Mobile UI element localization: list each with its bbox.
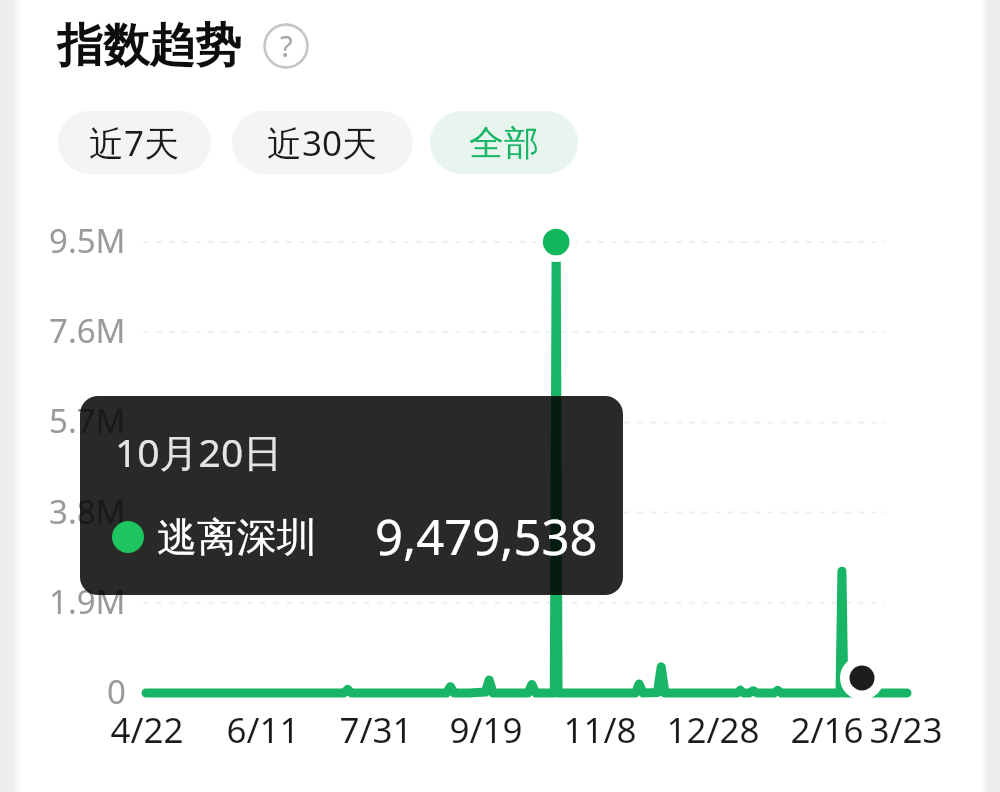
staticText: 9,479,538 <box>375 503 598 570</box>
staticText: 5.7M <box>49 398 126 440</box>
staticText: 逃离深圳 <box>157 512 317 562</box>
staticText: 12/28 <box>666 706 760 750</box>
staticText: 1.9M <box>49 579 126 621</box>
staticText: 近7天 <box>89 119 180 167</box>
button[interactable]: Trend chart <box>130 210 920 710</box>
staticText: 7.6M <box>49 308 126 350</box>
staticText: 10月20日 <box>115 425 283 478</box>
staticText: 11/8 <box>563 706 637 750</box>
button[interactable]: 近30天 <box>232 111 413 174</box>
staticText: 近30天 <box>267 119 378 167</box>
staticText: 9.5M <box>49 218 126 260</box>
staticText: 9/19 <box>449 706 523 750</box>
staticText: 3/23 <box>869 706 943 750</box>
staticText: 0 <box>107 669 126 711</box>
staticText: 2/16 <box>790 706 864 750</box>
staticText: 全部 <box>469 121 539 165</box>
button[interactable]: 全部 <box>430 111 578 174</box>
button[interactable]: 近7天 <box>58 111 211 174</box>
staticText: ? <box>280 26 293 65</box>
staticText: 7/31 <box>339 706 413 750</box>
button[interactable]: Help <box>263 23 309 69</box>
staticText: 3.8M <box>49 489 126 531</box>
staticText: 4/22 <box>110 706 184 750</box>
staticText: 指数趋势 <box>57 17 241 75</box>
staticText: 6/11 <box>226 706 300 750</box>
